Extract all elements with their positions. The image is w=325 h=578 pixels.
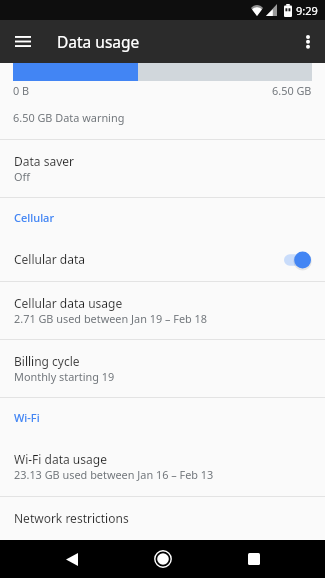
staticText: 9:29 bbox=[296, 3, 318, 18]
button[interactable]: Open navigation drawer bbox=[1, 20, 44, 63]
staticText: Cellular data bbox=[14, 251, 86, 267]
button[interactable]: Cellular data usage bbox=[0, 282, 325, 339]
button[interactable]: Recent apps bbox=[232, 540, 276, 578]
button[interactable]: More options bbox=[286, 20, 325, 63]
staticText: Billing cycle bbox=[14, 353, 80, 369]
button[interactable]: Wi-Fi data usage bbox=[0, 438, 325, 496]
staticText: 0 B bbox=[13, 83, 30, 98]
button[interactable]: Network restrictions bbox=[0, 497, 325, 540]
button[interactable]: Back bbox=[50, 540, 94, 578]
staticText: Network restrictions bbox=[14, 510, 129, 526]
staticText: Data usage bbox=[57, 31, 140, 52]
button[interactable]: Billing cycle bbox=[0, 340, 325, 397]
staticText: 6.50 GB bbox=[272, 83, 312, 98]
button[interactable]: Data saver bbox=[0, 140, 325, 197]
staticText: Wi-Fi bbox=[14, 410, 40, 425]
staticText: Off bbox=[14, 169, 30, 184]
staticText: 2.71 GB used between Jan 19 – Feb 18 bbox=[14, 311, 208, 326]
staticText: Cellular data usage bbox=[14, 295, 123, 311]
staticText: 6.50 GB Data warning bbox=[13, 110, 125, 125]
staticText: 23.13 GB used between Jan 16 – Feb 13 bbox=[14, 467, 214, 482]
staticText: Data saver bbox=[14, 153, 74, 169]
staticText: Monthly starting 19 bbox=[14, 369, 115, 384]
button[interactable]: Home bbox=[141, 540, 185, 578]
button[interactable]: Cellular data bbox=[0, 240, 325, 281]
staticText: Wi-Fi data usage bbox=[14, 451, 107, 467]
staticText: Cellular bbox=[14, 210, 55, 225]
